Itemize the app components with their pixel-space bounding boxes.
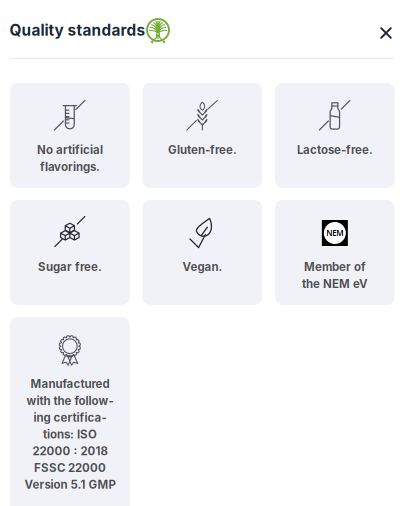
button[interactable]: Sugar free. (10, 200, 130, 305)
button[interactable]: Close (366, 13, 404, 53)
button[interactable]: NEM (275, 200, 395, 305)
staticText: Gluten-free. (168, 143, 237, 157)
button[interactable]: Gluten-free. (142, 83, 262, 188)
staticText: Quality standards (9, 21, 145, 40)
staticText: Vegan. (182, 260, 222, 274)
staticText: NEM (326, 228, 343, 238)
staticText: No artificial flavorings. (37, 143, 103, 174)
staticText: Manufactured with the follow- ing certif… (24, 377, 115, 491)
button[interactable]: No artificial flavorings. (10, 83, 130, 188)
button[interactable]: Manufactured with the follow- ing certif… (10, 317, 130, 506)
button[interactable]: Vegan. (142, 200, 262, 305)
staticText: Sugar free. (38, 260, 102, 274)
staticText: Member of the NEM eV (302, 260, 368, 291)
staticText: Lactose-free. (297, 143, 373, 157)
button[interactable]: Lactose-free. (275, 83, 395, 188)
